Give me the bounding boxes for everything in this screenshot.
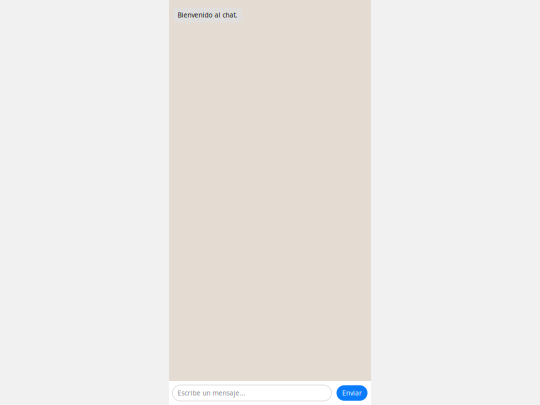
staticText: Enviar <box>342 389 362 397</box>
staticText: Escribe un mensaje... <box>177 389 245 397</box>
button[interactable]: Enviar <box>336 385 367 401</box>
button[interactable]: Escribe un mensaje... <box>172 385 331 401</box>
staticText: Bienvenido al chat. <box>177 10 237 19</box>
